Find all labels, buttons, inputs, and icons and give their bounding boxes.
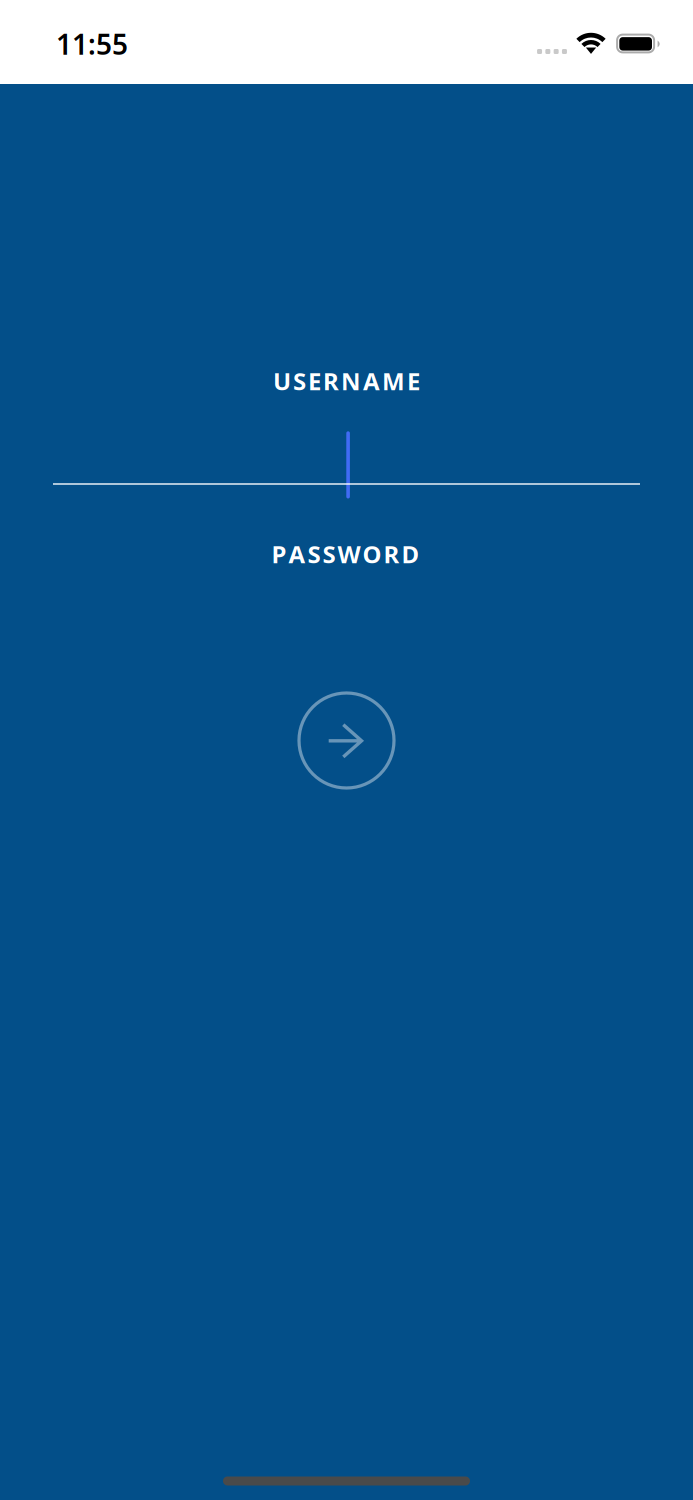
button[interactable]: Sign in [296,690,396,790]
button[interactable]: Password [53,539,640,649]
staticText: U S E R N A M E [273,365,420,397]
button[interactable]: Username [53,366,640,494]
staticText: 11:55 [56,25,128,63]
staticText: P A S S W O R D [271,538,419,570]
